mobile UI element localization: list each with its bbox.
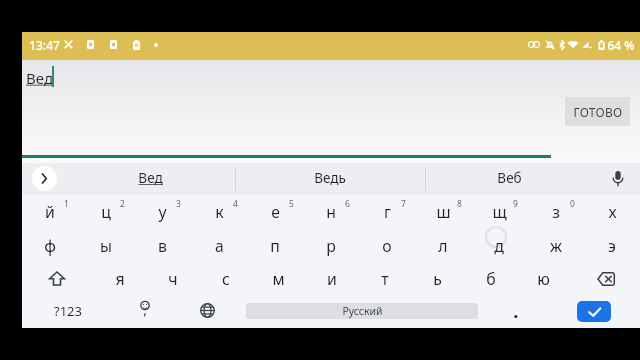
button[interactable]: ч bbox=[146, 262, 199, 295]
button[interactable]: г bbox=[359, 195, 415, 228]
button[interactable]: ?123 bbox=[33, 294, 103, 327]
button[interactable]: Веб bbox=[434, 162, 584, 194]
staticText: ю bbox=[537, 268, 550, 290]
staticText: 5 bbox=[289, 198, 294, 210]
staticText: е bbox=[271, 201, 280, 223]
staticText: 7 bbox=[401, 198, 406, 210]
button[interactable]: ь bbox=[411, 262, 464, 295]
button[interactable]: к bbox=[191, 195, 247, 228]
staticText: Русский bbox=[342, 304, 383, 318]
staticText: 9 bbox=[513, 198, 518, 210]
button[interactable]: а bbox=[191, 229, 247, 262]
button[interactable]: Switch language bbox=[183, 294, 231, 327]
button[interactable]: о bbox=[359, 229, 415, 262]
staticText: щ bbox=[492, 201, 507, 223]
staticText: ь bbox=[433, 268, 442, 290]
staticText: р bbox=[326, 235, 336, 257]
staticText: 6 bbox=[345, 198, 350, 210]
button[interactable]: Вед bbox=[90, 162, 210, 194]
button[interactable]: х bbox=[584, 195, 640, 228]
button[interactable]: ы bbox=[78, 229, 134, 262]
staticText: 13:47 bbox=[29, 37, 60, 53]
staticText: о bbox=[382, 235, 392, 257]
staticText: й bbox=[45, 201, 55, 223]
button[interactable]: е bbox=[247, 195, 303, 228]
button[interactable]: ГОТОВО bbox=[565, 97, 630, 126]
staticText: ы bbox=[100, 235, 112, 257]
staticText: г bbox=[384, 201, 391, 223]
button[interactable]: я bbox=[93, 262, 146, 295]
staticText: у bbox=[158, 201, 167, 223]
button[interactable]: в bbox=[134, 229, 190, 262]
staticText: 8 bbox=[457, 198, 462, 210]
staticText: м bbox=[272, 268, 285, 290]
button[interactable]: п bbox=[247, 229, 303, 262]
staticText: 4 bbox=[233, 198, 238, 210]
staticText: с bbox=[222, 268, 230, 290]
staticText: ц bbox=[101, 201, 111, 223]
button[interactable]: т bbox=[358, 262, 411, 295]
staticText: л bbox=[438, 235, 448, 257]
button[interactable]: с bbox=[199, 262, 252, 295]
button[interactable]: Enter bbox=[577, 301, 611, 322]
button[interactable]: ю bbox=[517, 262, 570, 295]
staticText: ГОТОВО bbox=[573, 104, 623, 120]
button[interactable]: б bbox=[464, 262, 517, 295]
button[interactable]: ф bbox=[22, 229, 78, 262]
button[interactable]: ш bbox=[415, 195, 471, 228]
button[interactable]: Русский bbox=[246, 303, 478, 319]
staticText: ж bbox=[550, 235, 562, 257]
staticText: в bbox=[158, 235, 167, 257]
button[interactable]: м bbox=[252, 262, 305, 295]
staticText: ш bbox=[436, 201, 451, 223]
button[interactable]: р bbox=[303, 229, 359, 262]
staticText: 2 bbox=[120, 198, 125, 210]
staticText: 0 bbox=[570, 198, 575, 210]
button[interactable]: Ведь bbox=[255, 162, 405, 194]
staticText: Вед bbox=[138, 169, 163, 187]
staticText: ч bbox=[168, 268, 178, 290]
staticText: н bbox=[326, 201, 336, 223]
staticText: б bbox=[486, 268, 496, 290]
button[interactable]: л bbox=[415, 229, 471, 262]
button[interactable]: э bbox=[584, 229, 640, 262]
button[interactable]: у bbox=[134, 195, 190, 228]
button[interactable]: Voice input bbox=[600, 162, 636, 194]
button[interactable]: ж bbox=[528, 229, 584, 262]
staticText: я bbox=[115, 268, 125, 290]
staticText: а bbox=[215, 235, 224, 257]
button[interactable]: й bbox=[22, 195, 78, 228]
staticText: п bbox=[270, 235, 280, 257]
button[interactable]: ц bbox=[78, 195, 134, 228]
staticText: Веб bbox=[497, 169, 522, 187]
button[interactable]: д bbox=[471, 229, 527, 262]
staticText: х bbox=[608, 201, 617, 223]
button[interactable]: з bbox=[528, 195, 584, 228]
button[interactable]: More suggestions bbox=[32, 166, 57, 191]
staticText: э bbox=[608, 235, 616, 257]
staticText: Ведь bbox=[314, 169, 346, 187]
staticText: з bbox=[552, 201, 560, 223]
button[interactable]: н bbox=[303, 195, 359, 228]
button[interactable]: щ bbox=[471, 195, 527, 228]
staticText: д bbox=[494, 235, 504, 257]
staticText: 1 bbox=[64, 198, 69, 210]
staticText: ?123 bbox=[54, 302, 82, 320]
button[interactable]: Shift bbox=[22, 262, 91, 295]
staticText: Вед bbox=[26, 68, 53, 88]
staticText: т bbox=[381, 268, 389, 290]
staticText: и bbox=[327, 268, 337, 290]
staticText: 64 % bbox=[607, 37, 635, 53]
staticText: ф bbox=[44, 235, 56, 257]
staticText: к bbox=[215, 201, 224, 223]
button[interactable] bbox=[492, 294, 540, 327]
button[interactable]: Backspace bbox=[572, 262, 640, 295]
button[interactable]: и bbox=[305, 262, 358, 295]
button[interactable]: Emoji bbox=[121, 294, 169, 327]
staticText: 3 bbox=[176, 198, 181, 210]
